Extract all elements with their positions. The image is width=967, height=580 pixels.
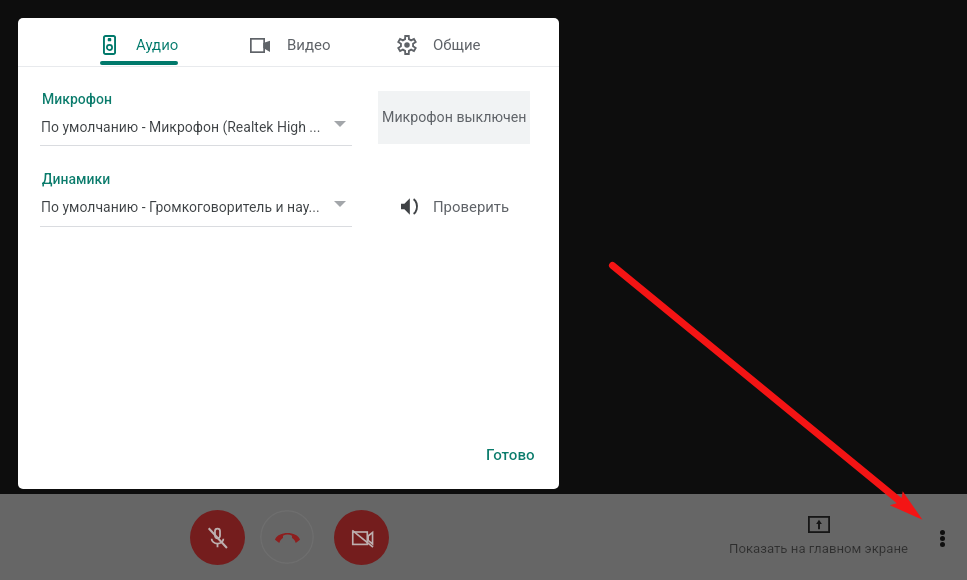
- button[interactable]: Аудио: [98, 24, 206, 66]
- button[interactable]: Проверить: [391, 186, 522, 227]
- button[interactable]: Ещё: [928, 514, 956, 562]
- button[interactable]: По умолчанию - Громкоговоритель и нау...: [40, 194, 354, 220]
- staticText: Микрофон: [42, 91, 112, 107]
- staticText: Общие: [433, 36, 481, 54]
- button[interactable]: Включить микрофон: [190, 510, 245, 565]
- staticText: Микрофон выключен: [382, 109, 527, 126]
- button[interactable]: Завершить звонок: [260, 510, 314, 564]
- button[interactable]: Общие: [392, 24, 514, 66]
- button[interactable]: Готово: [476, 438, 545, 472]
- button[interactable]: Включить камеру: [334, 510, 389, 565]
- staticText: По умолчанию - Микрофон (Realtek High ..…: [41, 119, 333, 135]
- staticText: Показать на главном экране: [729, 541, 909, 556]
- button[interactable]: Микрофон выключен: [378, 91, 530, 144]
- button[interactable]: Видео: [245, 24, 361, 66]
- staticText: Аудио: [136, 36, 179, 54]
- staticText: По умолчанию - Громкоговоритель и нау...: [41, 199, 333, 215]
- button[interactable]: Показать на главном экране: [705, 516, 933, 556]
- staticText: Готово: [486, 446, 535, 464]
- staticText: Динамики: [42, 171, 111, 187]
- staticText: Проверить: [433, 198, 510, 215]
- staticText: Видео: [287, 36, 331, 54]
- button[interactable]: По умолчанию - Микрофон (Realtek High ..…: [40, 114, 354, 140]
